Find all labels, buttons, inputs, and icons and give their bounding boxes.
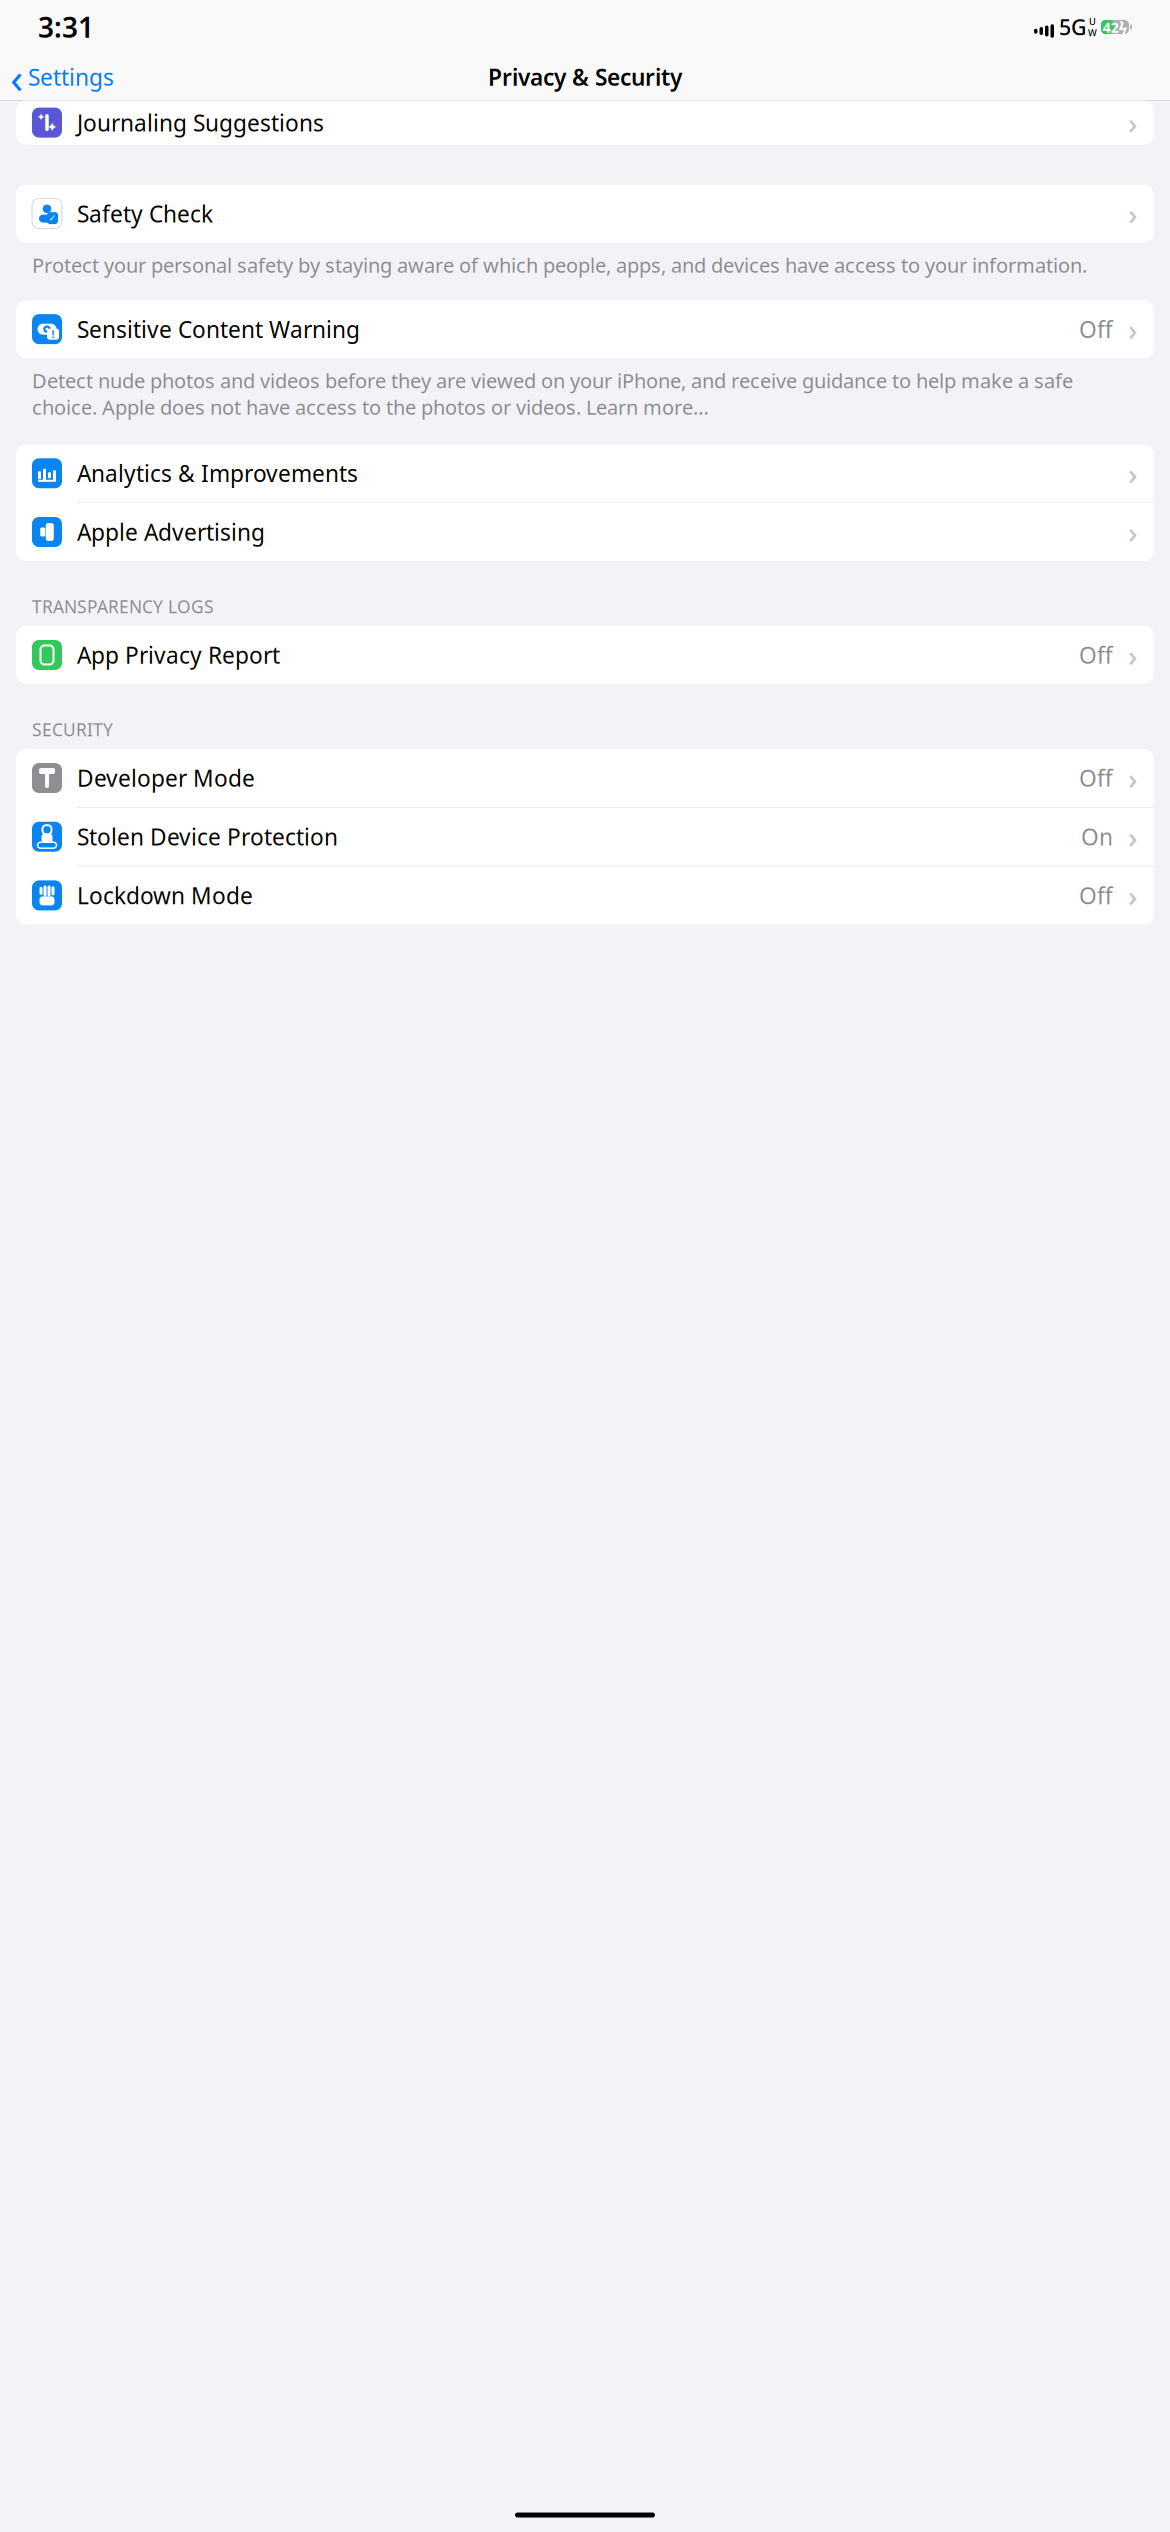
button[interactable]: ✦ — [16, 101, 1154, 145]
staticText: › — [1128, 194, 1138, 233]
button[interactable]: Developer Mode — [16, 749, 1154, 807]
staticText: Sensitive Content Warning — [77, 314, 360, 344]
staticText: ! — [51, 327, 54, 341]
button[interactable]: Stolen Device Protection — [16, 808, 1154, 866]
staticText: W — [1088, 26, 1097, 39]
staticText: U — [1089, 15, 1096, 27]
staticText: Journaling Suggestions — [77, 107, 324, 138]
staticText: Off — [1079, 880, 1113, 910]
staticText: › — [1128, 512, 1138, 551]
staticText: › — [1128, 758, 1138, 797]
button[interactable]: Apple Advertising — [16, 503, 1154, 561]
staticText: Protect your personal safety by staying … — [32, 252, 1087, 278]
staticText: Stolen Device Protection — [77, 822, 338, 852]
staticText: ✓ — [48, 213, 56, 223]
staticText: › — [1128, 103, 1138, 142]
staticText: App Privacy Report — [77, 640, 280, 670]
staticText: › — [1128, 817, 1138, 856]
button[interactable]: App Privacy Report — [16, 626, 1154, 684]
staticText: 5G — [1059, 13, 1087, 41]
staticText: Apple Advertising — [77, 517, 265, 547]
button[interactable]: ! — [16, 300, 1154, 358]
staticText: On — [1081, 822, 1113, 852]
staticText: SECURITY — [32, 718, 113, 741]
staticText: Settings — [28, 62, 114, 92]
staticText: Off — [1079, 763, 1113, 793]
staticText: ✦ — [36, 111, 45, 123]
staticText: Lockdown Mode — [77, 880, 253, 910]
staticText: Analytics & Improvements — [77, 458, 358, 488]
staticText: ✦ — [46, 119, 57, 135]
button[interactable]: ✓ — [16, 185, 1154, 243]
staticText: 42 — [1102, 17, 1118, 37]
staticText: Detect nude photos and videos before the… — [32, 367, 1073, 420]
staticText: ϟ — [1118, 16, 1127, 38]
staticText: TRANSPARENCY LOGS — [32, 595, 214, 618]
button[interactable]: Lockdown Mode — [16, 866, 1154, 924]
staticText: 3:31 — [38, 8, 94, 46]
staticText: › — [1128, 635, 1138, 674]
button[interactable]: ‹ — [0, 45, 114, 109]
staticText: Developer Mode — [77, 763, 255, 793]
staticText: › — [1128, 310, 1138, 349]
staticText: Privacy & Security — [488, 62, 682, 92]
staticText: Off — [1079, 314, 1113, 344]
button[interactable]: Analytics & Improvements — [16, 444, 1154, 502]
staticText: ‹ — [10, 49, 23, 105]
staticText: › — [1128, 876, 1138, 915]
staticText: Safety Check — [77, 198, 213, 229]
staticText: › — [1128, 454, 1138, 493]
staticText: Off — [1079, 640, 1113, 670]
